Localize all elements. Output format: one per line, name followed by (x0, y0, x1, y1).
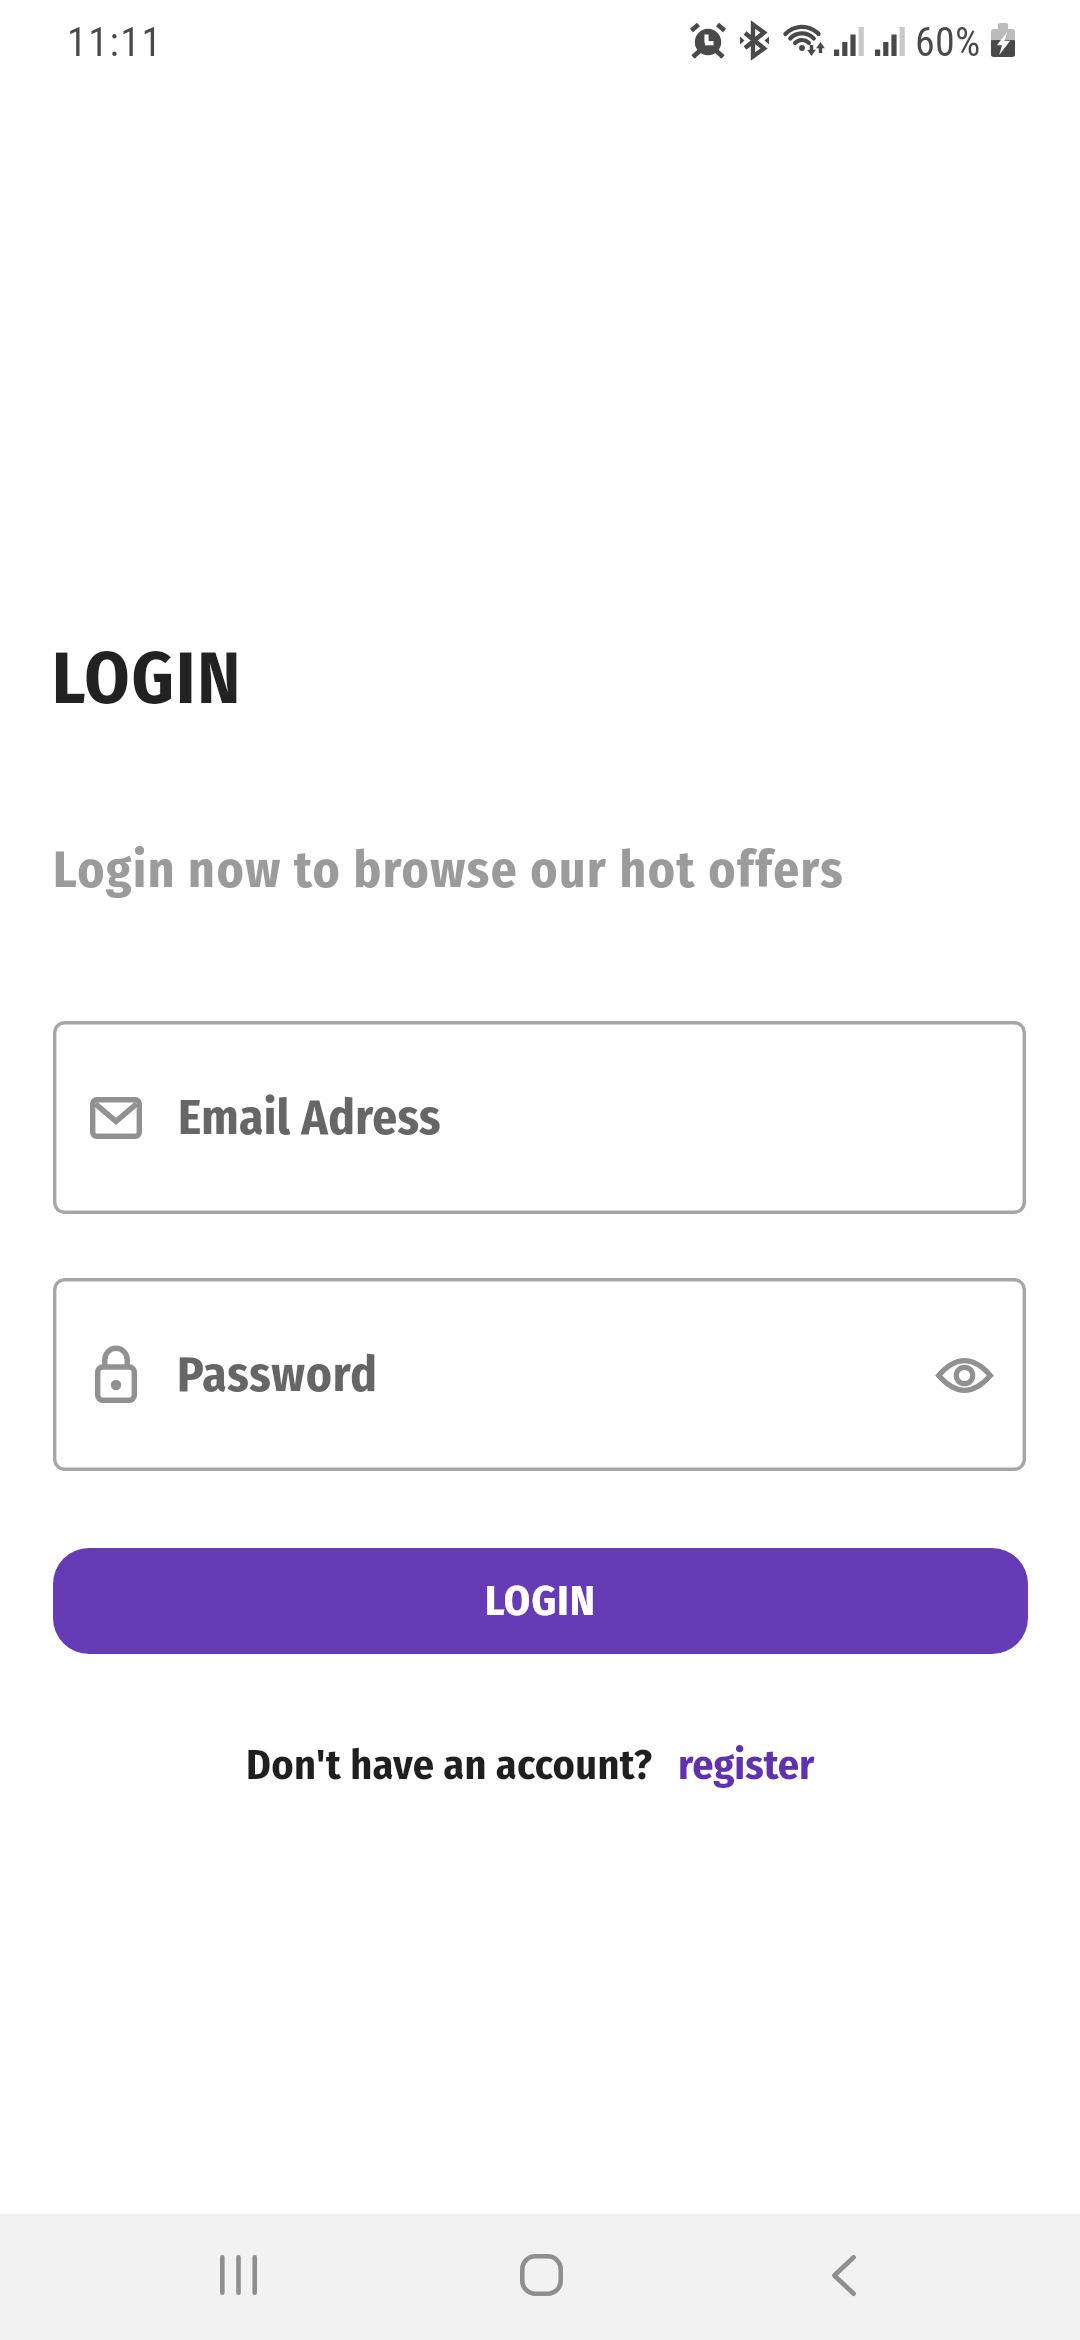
staticText: LOGIN (485, 1576, 596, 1626)
staticText: Don't have an account? (246, 1740, 653, 1790)
button[interactable]: register (678, 1740, 815, 1790)
staticText: Password (177, 1345, 378, 1404)
button[interactable]: Recent apps (150, 2212, 330, 2338)
staticText: 11:11 (67, 19, 163, 66)
button[interactable]: Email Adress (53, 1021, 1026, 1214)
staticText: Email Adress (178, 1088, 441, 1147)
button[interactable]: Home (451, 2212, 631, 2338)
button[interactable]: Back (754, 2212, 934, 2338)
staticText: register (678, 1740, 815, 1790)
staticText: LOGIN (52, 636, 243, 722)
button[interactable]: Show password (920, 1331, 1008, 1419)
button[interactable]: Password (53, 1278, 1026, 1471)
staticText: 60% (915, 19, 981, 66)
button[interactable]: LOGIN (53, 1548, 1028, 1654)
staticText: Login now to browse our hot offers (53, 839, 845, 900)
